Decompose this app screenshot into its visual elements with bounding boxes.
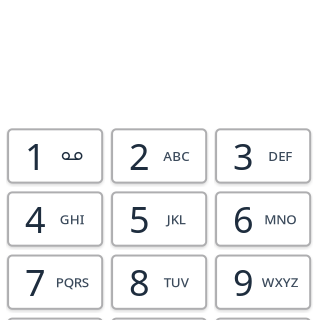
staticText: 8 xyxy=(129,258,150,306)
staticText: DEF xyxy=(268,147,292,165)
button[interactable]: 0 xyxy=(112,319,206,320)
staticText: 4 xyxy=(25,195,46,243)
button[interactable]: ∗ xyxy=(8,319,102,320)
staticText: ABC xyxy=(163,147,189,165)
staticText: GHI xyxy=(60,210,85,228)
staticText: 2 xyxy=(129,132,150,180)
button[interactable]: 2 xyxy=(112,129,206,183)
staticText: 9 xyxy=(233,258,254,306)
staticText: MNO xyxy=(264,210,296,228)
staticText: JKL xyxy=(167,210,186,228)
staticText: PQRS xyxy=(56,273,89,291)
button[interactable]: 5 xyxy=(112,192,206,246)
button[interactable]: 3 xyxy=(216,129,310,183)
button[interactable]: 4 xyxy=(8,192,102,246)
button[interactable]: # xyxy=(216,319,310,320)
staticText: 5 xyxy=(129,195,150,243)
button[interactable]: 1 xyxy=(8,129,102,183)
staticText: 1 xyxy=(25,132,46,180)
button[interactable]: 9 xyxy=(216,255,310,309)
staticText: WXYZ xyxy=(262,273,299,291)
staticText: 3 xyxy=(233,132,254,180)
staticText: TUV xyxy=(164,273,189,291)
button[interactable]: 6 xyxy=(216,192,310,246)
staticText: 6 xyxy=(233,195,254,243)
button[interactable]: 8 xyxy=(112,255,206,309)
staticText: 7 xyxy=(25,258,46,306)
button[interactable]: 7 xyxy=(8,255,102,309)
